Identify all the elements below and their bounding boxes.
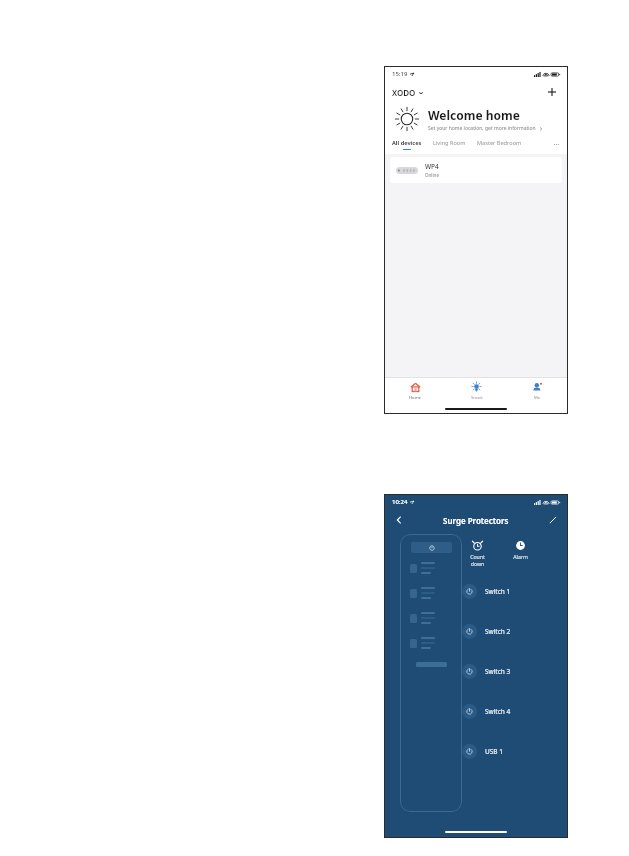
staticText: Surge Protectors: [443, 515, 509, 526]
staticText: Living Room: [433, 139, 466, 147]
button[interactable]: Count down: [468, 538, 487, 569]
button[interactable]: Back: [392, 513, 406, 527]
button[interactable]: More rooms: [550, 138, 562, 150]
staticText: USB 1: [485, 747, 503, 756]
button[interactable]: Home: [384, 378, 446, 404]
button[interactable]: XODO: [392, 87, 424, 98]
staticText: Online: [425, 172, 439, 178]
staticText: All devices: [392, 139, 422, 147]
button[interactable]: Switch 2: [462, 621, 558, 641]
button[interactable]: Switch 4: [462, 701, 558, 721]
button[interactable]: Switch 3: [462, 661, 558, 681]
staticText: Master Bedroom: [477, 139, 522, 147]
button[interactable]: WP4: [390, 157, 562, 183]
staticText: Switch 1: [485, 587, 511, 596]
staticText: Set your home location, get more informa…: [428, 125, 536, 132]
button[interactable]: Smart: [446, 378, 507, 404]
button[interactable]: All devices: [392, 139, 422, 150]
button[interactable]: Switch 1: [462, 581, 558, 601]
button[interactable]: Master Bedroom: [477, 139, 522, 149]
staticText: 15:19: [392, 70, 408, 78]
staticText: Switch 4: [485, 707, 511, 716]
staticText: XODO: [392, 87, 416, 98]
button[interactable]: Master power: [411, 542, 452, 553]
button[interactable]: Welcome home: [394, 106, 560, 132]
staticText: Smart: [471, 395, 483, 401]
button[interactable]: Living Room: [433, 139, 466, 149]
staticText: Switch 3: [485, 667, 511, 676]
button[interactable]: USB 1: [462, 741, 558, 761]
button[interactable]: Edit: [546, 513, 560, 527]
staticText: WP4: [425, 162, 439, 171]
button[interactable]: Alarm: [511, 538, 530, 562]
staticText: Home: [409, 395, 421, 401]
staticText: Switch 2: [485, 627, 511, 636]
staticText: Count down: [470, 553, 485, 567]
staticText: Welcome home: [428, 107, 520, 123]
button[interactable]: Me: [507, 378, 568, 404]
button[interactable]: Add device: [544, 84, 560, 100]
staticText: 10:24: [392, 498, 408, 506]
staticText: Me: [534, 395, 541, 401]
staticText: Alarm: [513, 553, 528, 560]
